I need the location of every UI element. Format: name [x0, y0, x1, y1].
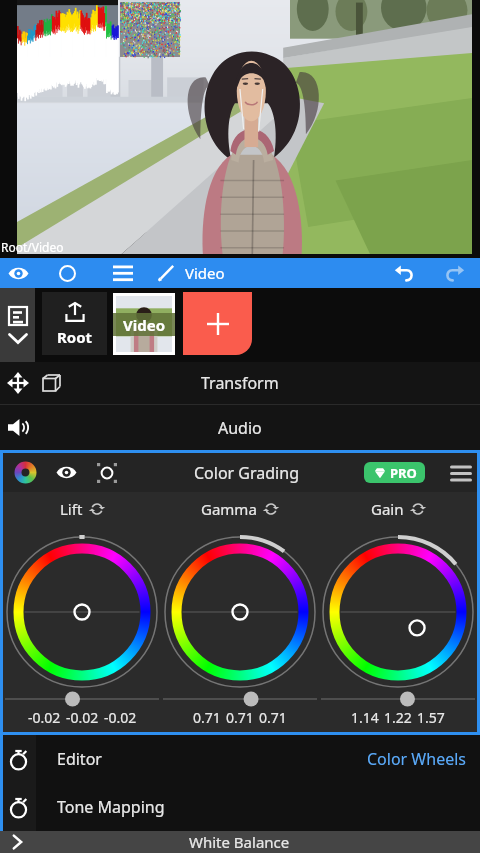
staticText: PRO [390, 464, 417, 482]
staticText: Tone Mapping [57, 796, 165, 818]
button[interactable]: Transform [0, 362, 480, 404]
staticText: Video [123, 315, 166, 335]
staticText: -0.02 [104, 708, 137, 727]
button[interactable]: Gain slider [319, 690, 477, 708]
staticText: Audio [218, 417, 262, 439]
staticText: -0.02 [66, 708, 99, 727]
button[interactable]: Layers [0, 288, 35, 362]
staticText: Transform [201, 372, 279, 394]
button[interactable]: Video [113, 293, 175, 355]
button[interactable]: Root [42, 292, 107, 355]
button[interactable]: Tone Mapping [0, 783, 480, 831]
staticText: Root/Video [1, 239, 64, 255]
button[interactable]: Color wheel [3, 453, 47, 492]
button[interactable]: Add clip [183, 292, 252, 355]
staticText: -0.02 [28, 708, 61, 727]
staticText: White Balance [189, 832, 290, 852]
button[interactable]: Undo [379, 258, 429, 288]
button[interactable]: Gamma slider [161, 690, 319, 708]
staticText: 0.71 [193, 708, 221, 727]
button[interactable]: Preview [0, 258, 37, 288]
staticText: 1.22 [384, 708, 412, 727]
button[interactable]: Redo [429, 258, 480, 288]
button[interactable]: PRO [364, 462, 425, 483]
button[interactable]: Lift color wheel [3, 526, 161, 690]
staticText: Gamma [201, 499, 257, 519]
button[interactable]: Visibility [47, 453, 85, 492]
staticText: Lift [60, 499, 83, 519]
staticText: 0.71 [259, 708, 287, 727]
staticText: 0.71 [226, 708, 254, 727]
staticText: Color Wheels [367, 748, 466, 770]
button[interactable]: Lift [60, 499, 105, 519]
button[interactable]: Gamma [201, 499, 279, 519]
button[interactable]: White Balance [0, 831, 480, 853]
button[interactable]: Mask [85, 453, 129, 492]
button[interactable]: Options [444, 453, 477, 492]
button[interactable]: Gain color wheel [319, 526, 477, 690]
button[interactable]: Audio [0, 405, 480, 450]
button[interactable]: Editor [0, 735, 480, 783]
button[interactable]: Gamma color wheel [161, 526, 319, 690]
button[interactable]: Shape [37, 258, 97, 288]
staticText: Color Grading [194, 462, 299, 484]
staticText: 1.14 [351, 708, 379, 727]
staticText: Gain [371, 499, 404, 519]
staticText: Video [185, 263, 225, 283]
staticText: Editor [57, 748, 102, 770]
button[interactable]: Lift slider [3, 690, 161, 708]
button[interactable]: Menu [97, 258, 148, 288]
button[interactable]: Video [148, 258, 235, 288]
button[interactable]: Gain [371, 499, 426, 519]
staticText: 1.57 [417, 708, 445, 727]
staticText: Root [57, 327, 93, 347]
